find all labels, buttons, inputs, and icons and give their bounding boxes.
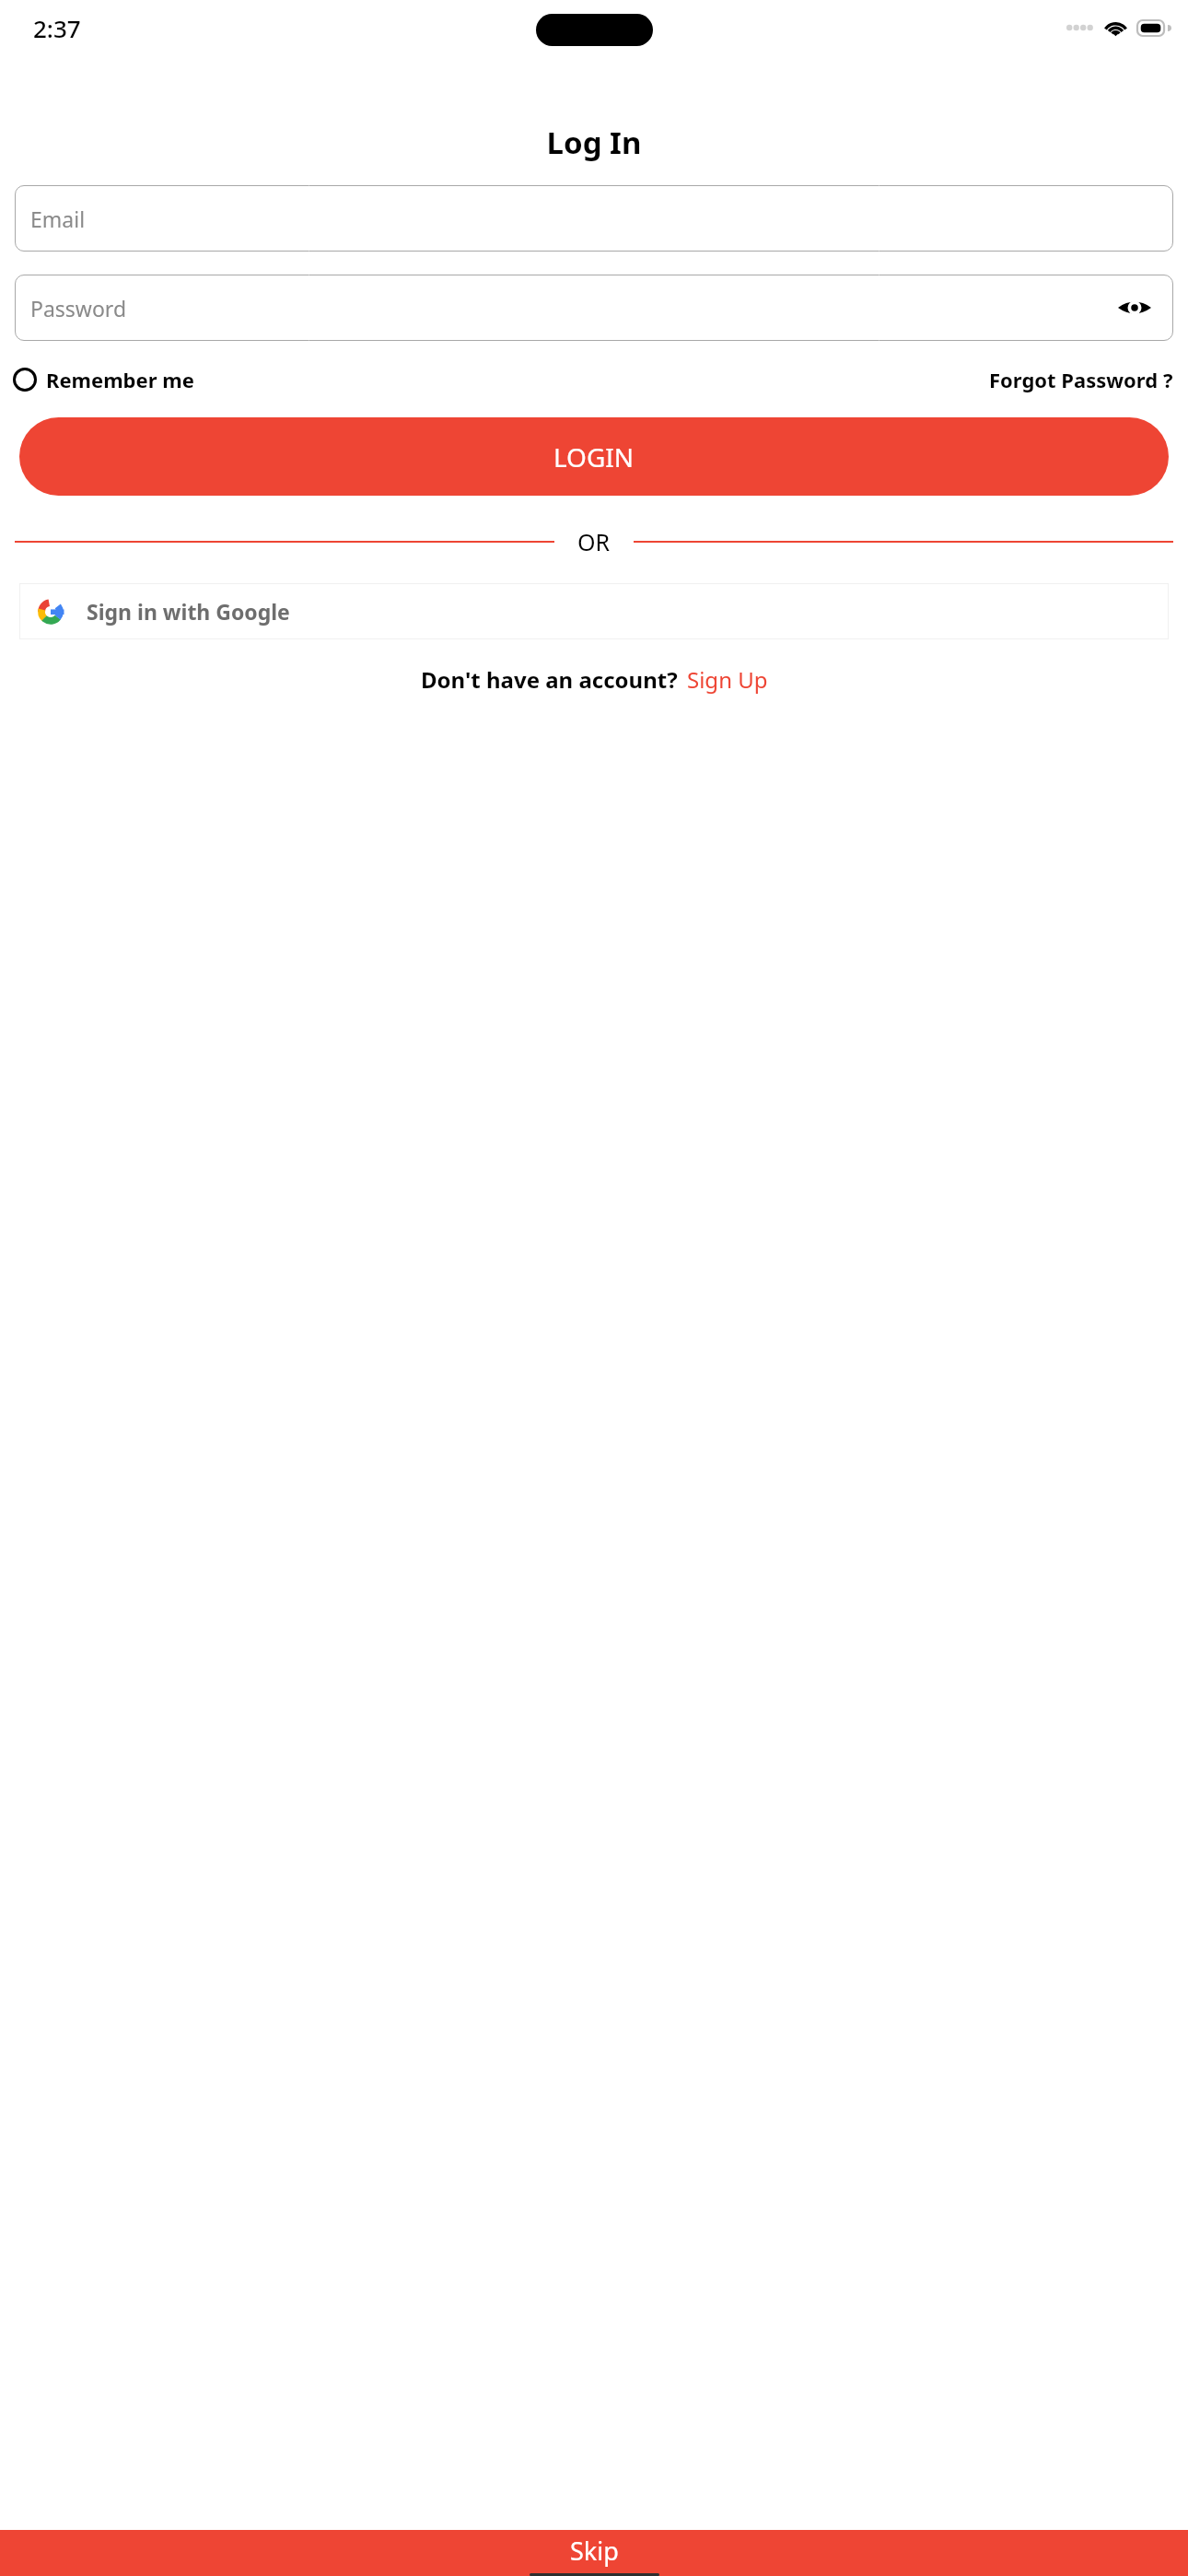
button[interactable]: Password [15,275,1173,341]
staticText: Log In [0,122,1188,163]
button[interactable]: Sign Up [687,664,768,695]
staticText: LOGIN [553,439,635,474]
staticText: Don't have an account? [421,664,678,695]
button[interactable]: Remember me [13,366,194,393]
staticText: Remember me [46,366,194,393]
button[interactable]: Sign in with Google [19,583,1169,639]
staticText: Sign in with Google [87,597,290,626]
staticText: 2:37 [33,12,81,44]
staticText: Skip [570,2534,619,2568]
button[interactable]: Skip [0,2530,1188,2576]
button[interactable]: LOGIN [19,417,1169,496]
button[interactable]: Show password [1114,287,1155,328]
button[interactable]: Forgot Password ? [989,366,1175,393]
staticText: Email [30,205,86,233]
staticText: OR [577,526,611,557]
staticText: Password [30,294,127,322]
button[interactable]: Email [15,185,1173,252]
